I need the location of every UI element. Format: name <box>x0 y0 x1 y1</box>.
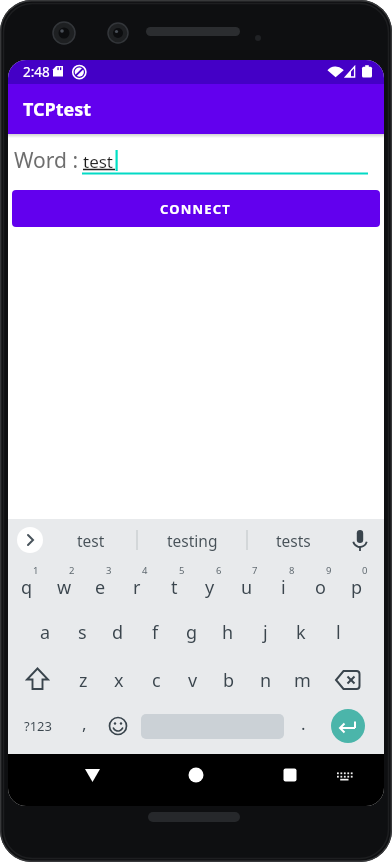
button[interactable]: n <box>248 657 284 703</box>
staticText: x <box>114 668 124 693</box>
button[interactable]: j <box>247 609 283 655</box>
staticText: TCPtest <box>23 97 92 122</box>
button[interactable]: a <box>27 609 63 655</box>
staticText: g <box>186 620 198 645</box>
staticText: y <box>205 575 215 600</box>
button[interactable]: CONNECT <box>12 190 380 227</box>
staticText: 0 <box>362 564 368 577</box>
button[interactable]: e <box>82 565 118 609</box>
button[interactable]: r <box>119 565 155 609</box>
staticText: n <box>260 668 272 693</box>
button[interactable]: f <box>137 609 173 655</box>
staticText: s <box>78 620 87 645</box>
button[interactable] <box>17 527 43 553</box>
button[interactable]: ?123 <box>16 703 60 749</box>
staticText: 3 <box>106 564 112 577</box>
staticText: r <box>133 575 141 600</box>
staticText: , <box>82 712 87 735</box>
staticText: . <box>301 712 306 735</box>
button[interactable]: p <box>339 565 375 609</box>
button[interactable]: q <box>9 565 45 609</box>
staticText: 2 <box>69 564 75 577</box>
staticText: test <box>77 530 105 551</box>
button[interactable]: z <box>65 657 101 703</box>
staticText: e <box>95 575 106 600</box>
button[interactable] <box>269 755 311 797</box>
button[interactable]: testing <box>146 519 238 561</box>
button[interactable]: b <box>211 657 247 703</box>
staticText: p <box>351 575 363 600</box>
staticText: 6 <box>216 564 222 577</box>
staticText: m <box>294 668 311 693</box>
staticText: i <box>281 575 286 600</box>
button[interactable]: g <box>174 609 210 655</box>
staticText: testing <box>167 530 218 551</box>
staticText: u <box>241 575 253 600</box>
staticText: 4 <box>142 564 148 577</box>
button[interactable]: h <box>210 609 246 655</box>
staticText: tests <box>276 530 311 551</box>
button[interactable]: test <box>82 134 376 189</box>
button[interactable]: tests <box>250 519 336 561</box>
staticText: l <box>336 620 341 645</box>
button[interactable] <box>72 755 114 797</box>
staticText: 8 <box>289 564 295 577</box>
staticText: CONNECT <box>160 200 232 218</box>
button[interactable]: x <box>101 657 137 703</box>
button[interactable]: . <box>290 700 316 746</box>
staticText: 2:48 <box>23 63 50 81</box>
staticText: 7 <box>252 564 258 577</box>
button[interactable]: test <box>48 519 134 561</box>
button[interactable]: l <box>320 609 356 655</box>
staticText: j <box>263 620 268 645</box>
button[interactable]: v <box>175 657 211 703</box>
staticText: w <box>57 575 72 600</box>
staticText: test <box>83 150 114 173</box>
staticText: k <box>296 620 306 645</box>
button[interactable]: s <box>64 609 100 655</box>
button[interactable]: y <box>192 565 228 609</box>
staticText: 9 <box>326 564 332 577</box>
staticText: c <box>152 668 161 693</box>
staticText: 5 <box>179 564 185 577</box>
staticText: a <box>40 620 51 645</box>
button[interactable]: d <box>100 609 136 655</box>
staticText: b <box>223 668 235 693</box>
button[interactable]: w <box>46 565 82 609</box>
button[interactable] <box>328 657 370 703</box>
button[interactable]: k <box>283 609 319 655</box>
button[interactable] <box>18 657 58 703</box>
staticText: h <box>222 620 234 645</box>
staticText: d <box>112 620 124 645</box>
staticText: Word : <box>14 146 79 175</box>
staticText: q <box>21 575 33 600</box>
staticText: t <box>171 575 178 600</box>
staticText: v <box>188 668 198 693</box>
button[interactable]: i <box>265 565 301 609</box>
staticText: z <box>79 668 88 693</box>
button[interactable]: t <box>156 565 192 609</box>
button[interactable] <box>104 703 132 749</box>
staticText: f <box>152 620 159 645</box>
button[interactable]: m <box>284 657 320 703</box>
button[interactable]: c <box>138 657 174 703</box>
staticText: ?123 <box>24 717 52 735</box>
button[interactable]: o <box>302 565 338 609</box>
button[interactable] <box>175 755 217 797</box>
button[interactable] <box>331 709 365 743</box>
staticText: 1 <box>33 564 39 577</box>
button[interactable]: , <box>71 700 97 746</box>
staticText: o <box>315 575 326 600</box>
button[interactable]: u <box>229 565 265 609</box>
